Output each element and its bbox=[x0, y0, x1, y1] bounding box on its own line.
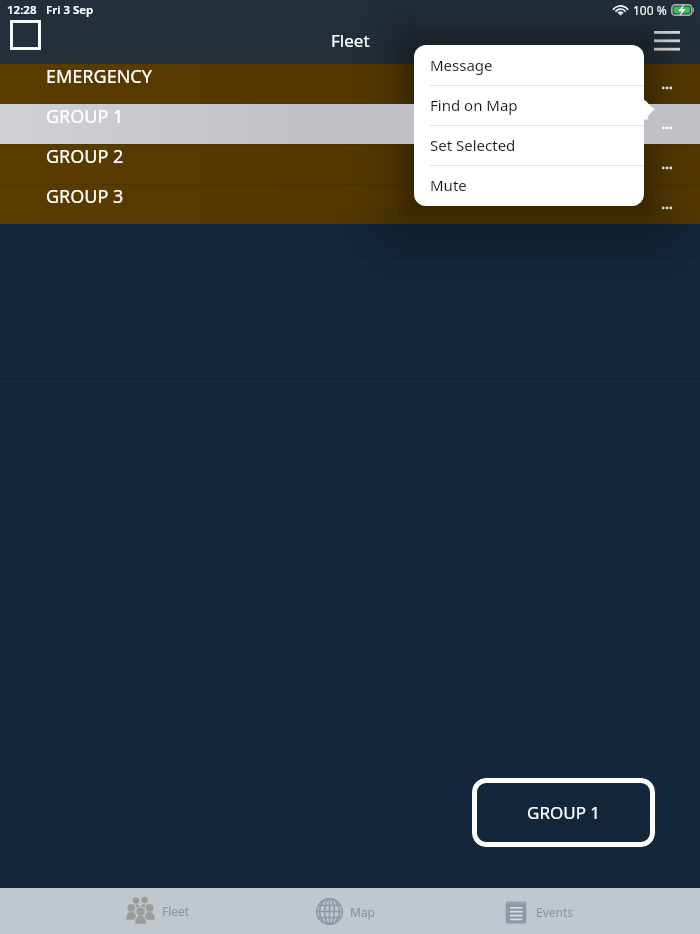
staticText: Fleet bbox=[162, 903, 190, 919]
button[interactable]: Select all bbox=[10, 20, 41, 50]
button[interactable]: EMERGENCY bbox=[0, 64, 700, 104]
staticText: GROUP 3 bbox=[46, 184, 124, 209]
staticText: Set Selected bbox=[430, 135, 516, 155]
staticText: Fleet bbox=[331, 29, 370, 52]
button[interactable]: Set Selected bbox=[414, 125, 643, 165]
staticText: Map bbox=[350, 904, 375, 920]
button[interactable]: GROUP 2 bbox=[0, 144, 700, 184]
button[interactable]: GROUP 3 bbox=[0, 184, 700, 224]
staticText: Fri 3 Sep bbox=[46, 2, 94, 18]
staticText: Mute bbox=[430, 175, 467, 195]
button[interactable]: Fleet bbox=[73, 888, 243, 934]
button[interactable]: GROUP 1 bbox=[472, 778, 655, 847]
staticText: GROUP 2 bbox=[46, 144, 124, 169]
button[interactable]: GROUP 1 bbox=[0, 104, 700, 144]
button[interactable]: Mute bbox=[414, 165, 643, 205]
staticText: Events bbox=[536, 904, 574, 920]
staticText: GROUP 1 bbox=[46, 104, 124, 129]
button[interactable]: More options bbox=[654, 116, 700, 141]
staticText: 12:28 bbox=[7, 2, 37, 18]
button[interactable]: More options bbox=[654, 156, 700, 181]
button[interactable]: More options bbox=[654, 76, 700, 101]
staticText: GROUP 1 bbox=[527, 801, 601, 824]
staticText: Message bbox=[430, 55, 493, 75]
staticText: Find on Map bbox=[430, 95, 518, 115]
button[interactable]: Find on Map bbox=[414, 85, 643, 125]
staticText: EMERGENCY bbox=[46, 64, 152, 89]
button[interactable]: More options bbox=[654, 196, 700, 221]
button[interactable]: Message bbox=[414, 45, 643, 85]
button[interactable]: Menu bbox=[654, 30, 680, 51]
button[interactable]: Map bbox=[260, 888, 430, 934]
button[interactable]: Events bbox=[454, 888, 624, 934]
staticText: 100 % bbox=[633, 2, 667, 18]
